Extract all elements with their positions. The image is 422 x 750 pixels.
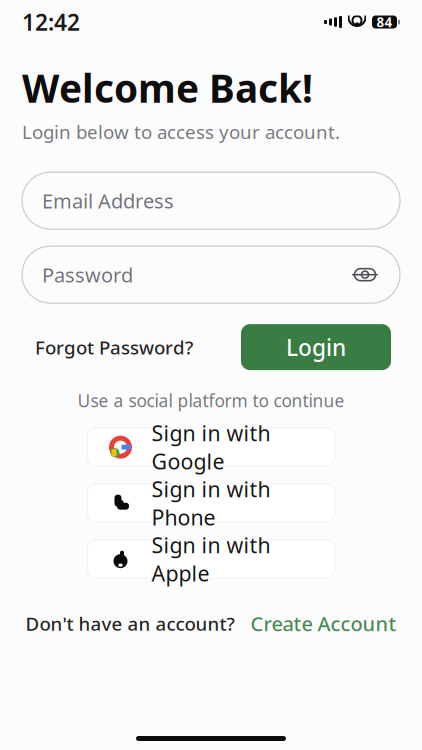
button[interactable]: Login [241, 324, 391, 370]
staticText: Create Account [250, 610, 396, 637]
staticText: Sign in with Apple [151, 531, 270, 587]
staticText: Welcome Back! [22, 62, 313, 113]
button[interactable]: Sign in with Phone [87, 484, 334, 522]
staticText: Login below to access your account. [22, 119, 340, 144]
staticText: Password [42, 261, 133, 288]
staticText: Email Address [42, 187, 174, 214]
button[interactable]: Sign in with Google [87, 428, 334, 466]
staticText: Sign in with Phone [151, 475, 270, 531]
button[interactable]: Create Account [250, 604, 396, 643]
button[interactable]: Forgot Password? [31, 325, 197, 369]
staticText: Sign in with Google [151, 419, 270, 475]
staticText: Don't have an account? [25, 611, 234, 636]
staticText: Login [286, 332, 346, 362]
button[interactable]: Sign in with Apple [87, 540, 334, 578]
staticText: Use a social platform to continue [77, 389, 344, 412]
staticText: 84 [376, 13, 392, 31]
staticText: Forgot Password? [35, 335, 193, 359]
staticText: 12:42 [22, 7, 80, 37]
button[interactable]: Show password [350, 260, 380, 290]
